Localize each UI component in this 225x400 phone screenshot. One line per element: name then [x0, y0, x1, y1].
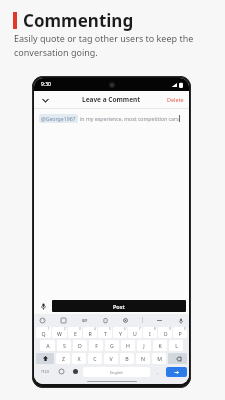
staticText: G [110, 342, 114, 349]
staticText: X [77, 355, 81, 362]
staticText: 2 [64, 327, 66, 331]
button[interactable]: J [137, 340, 151, 351]
button[interactable]: S [57, 340, 71, 351]
button[interactable]: 1 [36, 327, 51, 338]
staticText: P [178, 330, 182, 337]
button[interactable]: Period [152, 366, 164, 377]
staticText: M [157, 355, 162, 362]
staticText: 3 [79, 327, 81, 331]
button[interactable]: M [152, 353, 166, 364]
button[interactable]: Emoji [38, 316, 47, 325]
button[interactable]: Settings [121, 316, 130, 325]
staticText: U [133, 330, 137, 337]
button[interactable]: F [89, 340, 103, 351]
button[interactable]: 6 [113, 327, 127, 338]
button[interactable]: G [105, 340, 119, 351]
staticText: K [158, 342, 162, 349]
staticText: L [175, 342, 178, 349]
staticText: 0 [184, 327, 186, 331]
staticText: H [126, 342, 130, 349]
staticText: S [63, 342, 66, 349]
staticText: Easily quote or tag other users to keep … [14, 32, 194, 44]
staticText: 9:30 [41, 81, 51, 88]
staticText: 7 [139, 327, 141, 331]
button[interactable]: 9 [158, 327, 172, 338]
button[interactable]: K [153, 340, 167, 351]
staticText: GIF [82, 319, 88, 323]
staticText: Leave a Comment [82, 95, 141, 104]
button[interactable]: D [73, 340, 87, 351]
staticText: Y [119, 330, 122, 337]
staticText: in my experience, most competition cars [80, 115, 179, 122]
button[interactable]: Stickers [59, 316, 68, 325]
button[interactable]: H [121, 340, 135, 351]
button[interactable]: C [88, 353, 102, 364]
staticText: 8 [154, 327, 156, 331]
button[interactable]: English [83, 367, 150, 377]
staticText: 1 [48, 327, 50, 331]
staticText: I [149, 330, 151, 337]
button[interactable]: Delete [167, 96, 184, 103]
button[interactable]: X [72, 353, 86, 364]
button[interactable]: Backspace [168, 353, 187, 364]
staticText: F [95, 342, 98, 349]
button[interactable]: Clipboard [101, 316, 110, 325]
staticText: V [109, 355, 113, 362]
button[interactable]: Voice input [37, 300, 50, 313]
button[interactable]: Shift [36, 353, 54, 364]
staticText: Commenting [23, 9, 134, 32]
staticText: 4 [94, 327, 96, 331]
button[interactable]: 0 [173, 327, 187, 338]
button[interactable]: Collapse [39, 94, 51, 106]
staticText: @George1967 [41, 115, 76, 122]
staticText: W [57, 330, 62, 337]
staticText: R [88, 330, 92, 337]
button[interactable]: 2 [52, 327, 67, 338]
button[interactable]: A [40, 340, 55, 351]
button[interactable]: 8 [143, 327, 157, 338]
button[interactable]: Language [69, 366, 81, 377]
staticText: ?123 [41, 369, 49, 374]
staticText: Delete [167, 96, 184, 103]
staticText: N [141, 355, 145, 362]
staticText: Post [113, 303, 125, 310]
staticText: T [104, 330, 107, 337]
staticText: C [93, 355, 97, 362]
button[interactable]: N [136, 353, 150, 364]
button[interactable]: 5 [98, 327, 112, 338]
button[interactable]: 3 [68, 327, 82, 338]
button[interactable]: L [169, 340, 183, 351]
button[interactable]: GIF [80, 316, 89, 325]
button[interactable]: Post [52, 300, 186, 312]
staticText: English [110, 370, 123, 375]
button[interactable]: @George1967 [41, 115, 76, 122]
button[interactable]: Z [56, 353, 70, 364]
staticText: . [157, 369, 159, 375]
button[interactable]: Collapse [34, 91, 189, 108]
staticText: A [46, 342, 50, 349]
button[interactable]: 4 [83, 327, 97, 338]
staticText: D [78, 342, 82, 349]
staticText: 5 [109, 327, 111, 331]
button[interactable]: More [155, 316, 164, 325]
staticText: 6 [124, 327, 126, 331]
button[interactable]: V [104, 353, 118, 364]
staticText: E [74, 330, 77, 337]
staticText: O [163, 330, 168, 337]
button[interactable]: 7 [128, 327, 142, 338]
staticText: conversation going. [14, 46, 98, 58]
button[interactable]: Symbols [36, 366, 54, 377]
staticText: 9 [169, 327, 171, 331]
staticText: B [125, 355, 129, 362]
staticText: J [143, 342, 145, 349]
button[interactable]: Voice [176, 316, 185, 325]
staticText: Q [41, 330, 46, 337]
staticText: Z [62, 355, 65, 362]
button[interactable]: Enter [166, 367, 187, 377]
button[interactable]: Emoji [56, 366, 67, 377]
button[interactable]: B [120, 353, 134, 364]
